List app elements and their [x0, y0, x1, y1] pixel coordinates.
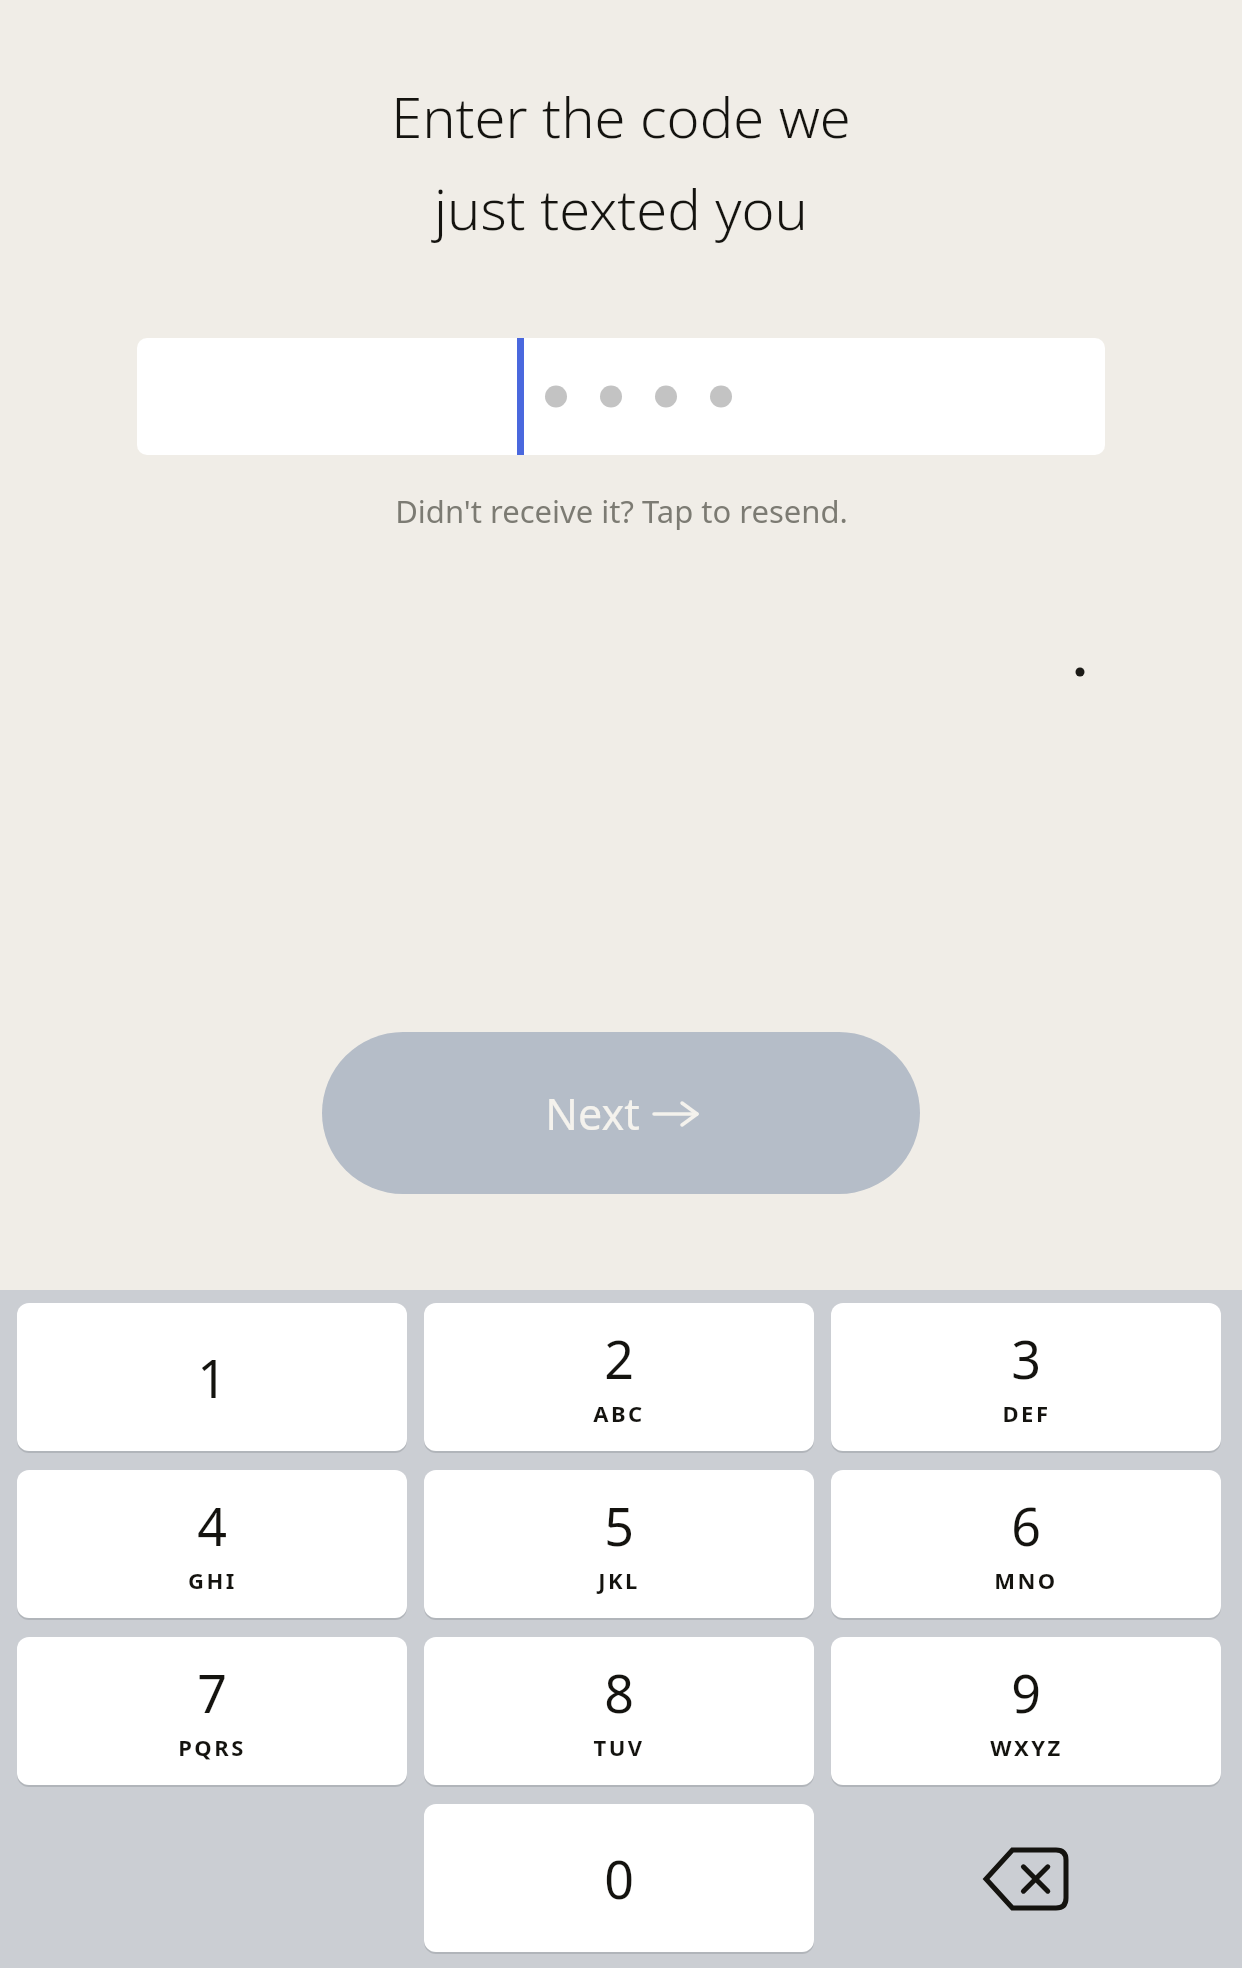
button[interactable]: 2: [424, 1303, 814, 1453]
button[interactable]: 3: [831, 1303, 1221, 1453]
staticText: Next: [545, 1084, 640, 1143]
staticText: 7: [197, 1657, 227, 1728]
staticText: 1: [197, 1342, 227, 1413]
staticText: 3: [1011, 1323, 1041, 1394]
staticText: WXYZ: [990, 1732, 1063, 1762]
button[interactable]: 4: [17, 1470, 407, 1620]
staticText: Enter the code we: [391, 78, 851, 154]
button[interactable]: 0: [424, 1804, 814, 1954]
staticText: GHI: [188, 1565, 237, 1595]
button[interactable]: Next: [322, 1032, 920, 1194]
staticText: MNO: [994, 1565, 1058, 1595]
button[interactable]: 5: [424, 1470, 814, 1620]
button[interactable]: Didn't receive it? Tap to resend.: [395, 490, 848, 532]
staticText: 6: [1011, 1490, 1041, 1561]
staticText: 4: [197, 1490, 227, 1561]
staticText: PQRS: [178, 1732, 246, 1762]
staticText: TUV: [593, 1732, 645, 1762]
button[interactable]: 1: [17, 1303, 407, 1453]
staticText: 2: [604, 1323, 634, 1394]
staticText: JKL: [598, 1565, 640, 1595]
staticText: 5: [604, 1490, 634, 1561]
staticText: Didn't receive it? Tap to resend.: [395, 490, 848, 532]
staticText: 9: [1011, 1657, 1041, 1728]
staticText: ABC: [593, 1398, 645, 1428]
button[interactable]: 8: [424, 1637, 814, 1787]
staticText: DEF: [1002, 1398, 1051, 1428]
staticText: 8: [604, 1657, 634, 1728]
button[interactable]: [137, 338, 1105, 455]
button[interactable]: Backspace: [831, 1804, 1221, 1954]
button[interactable]: 6: [831, 1470, 1221, 1620]
staticText: 0: [604, 1843, 634, 1914]
button[interactable]: 7: [17, 1637, 407, 1787]
staticText: just texted you: [434, 170, 808, 246]
button[interactable]: 9: [831, 1637, 1221, 1787]
